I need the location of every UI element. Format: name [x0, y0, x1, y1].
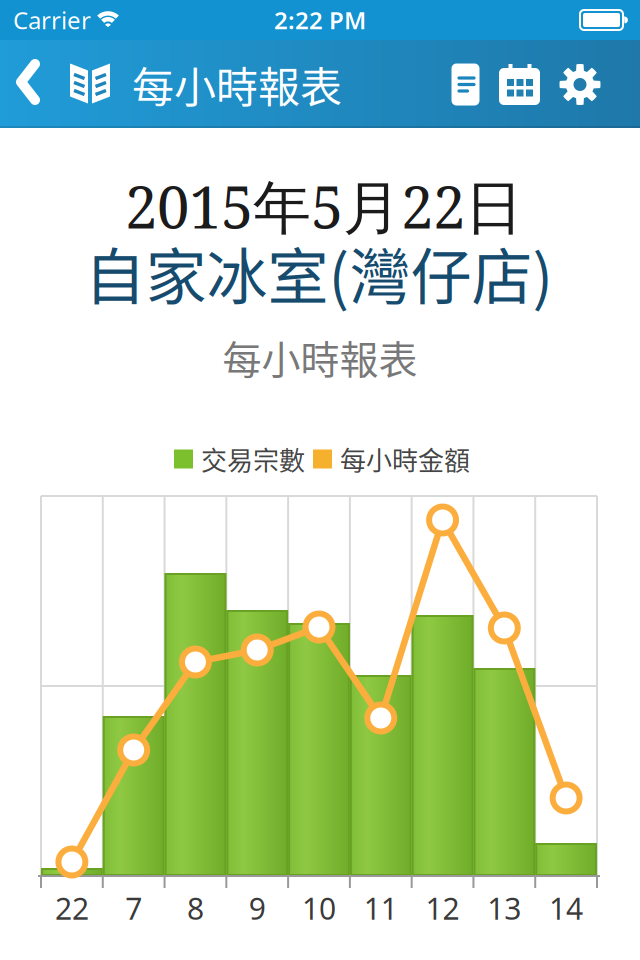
staticText: 7 [125, 888, 142, 928]
staticText: Carrier [13, 4, 91, 36]
staticText: 2015年5月22日 [125, 166, 523, 245]
button[interactable]: Reports [445, 58, 485, 110]
staticText: 22 [55, 888, 89, 928]
staticText: 12 [426, 888, 460, 928]
button[interactable]: Calendar [495, 58, 543, 110]
staticText: 每小時報表 [222, 329, 417, 385]
button[interactable]: Settings [556, 58, 604, 110]
staticText: 11 [364, 888, 398, 928]
staticText: 13 [487, 888, 521, 928]
staticText: 9 [249, 888, 266, 928]
staticText: 每小時金額 [340, 440, 470, 478]
staticText: 自家冰室(灣仔店) [84, 229, 553, 317]
staticText: 交易宗數 [201, 440, 305, 478]
staticText: 8 [187, 888, 204, 928]
staticText: 10 [302, 888, 336, 928]
button[interactable]: Back [8, 52, 48, 112]
staticText: 14 [549, 888, 583, 928]
staticText: 2:22 PM [274, 4, 366, 36]
staticText: 每小時報表 [132, 54, 342, 115]
